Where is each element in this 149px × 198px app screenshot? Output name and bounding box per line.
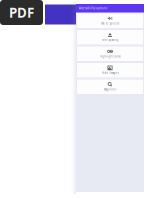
button[interactable]: Hide Images	[77, 63, 143, 77]
staticText: PDF	[9, 4, 34, 21]
staticText: Font Spacing	[101, 38, 118, 42]
button[interactable]: Magnifier	[77, 79, 143, 94]
staticText: Highlight Links	[99, 55, 120, 58]
staticText: Hide Images	[101, 71, 118, 75]
button[interactable]: Text To Speech	[77, 13, 143, 28]
staticText: Accessibility options	[79, 6, 107, 10]
staticText: Magnifier	[103, 88, 116, 91]
button[interactable]: Font Spacing	[77, 30, 143, 44]
button[interactable]: Highlight Links	[77, 46, 143, 61]
button[interactable]: PDF	[0, 0, 43, 25]
staticText: Text To Speech	[100, 22, 119, 25]
